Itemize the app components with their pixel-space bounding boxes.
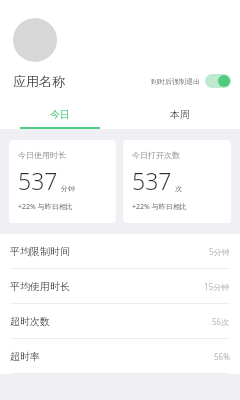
staticText: 56次 — [212, 316, 230, 327]
staticText: 今日 — [50, 108, 70, 121]
staticText: 56% — [214, 351, 230, 362]
button[interactable]: 今日使用时长 — [9, 140, 116, 223]
button[interactable]: 超时次数 — [0, 304, 240, 338]
other: Force exit toggle — [205, 74, 231, 88]
staticText: 到时后强制退出 — [151, 77, 200, 86]
button[interactable]: 今日打开次数 — [123, 140, 231, 223]
button[interactable]: 平均限制时间 — [0, 234, 240, 268]
button[interactable]: 平均使用时长 — [0, 269, 240, 303]
staticText: 超时率 — [10, 350, 40, 363]
staticText: 本周 — [170, 108, 190, 121]
staticText: 分钟 — [61, 184, 75, 193]
staticText: 超时次数 — [10, 315, 50, 328]
staticText: 平均限制时间 — [10, 245, 70, 258]
button[interactable]: 到时后强制退出 — [151, 69, 231, 93]
staticText: 15分钟 — [204, 281, 230, 292]
staticText: 537 — [132, 165, 172, 196]
staticText: 537 — [18, 165, 58, 196]
staticText: 次 — [175, 184, 182, 193]
button[interactable]: 超时率 — [0, 339, 240, 373]
staticText: +22% 与昨日相比 — [132, 202, 187, 212]
staticText: 应用名称 — [13, 73, 65, 89]
staticText: 今日使用时长 — [18, 150, 66, 160]
button[interactable]: 今日 — [0, 101, 120, 127]
staticText: 平均使用时长 — [10, 280, 70, 293]
staticText: +22% 与昨日相比 — [18, 202, 73, 212]
staticText: 今日打开次数 — [132, 150, 180, 160]
staticText: 5分钟 — [209, 246, 230, 257]
button[interactable]: 本周 — [120, 101, 240, 127]
